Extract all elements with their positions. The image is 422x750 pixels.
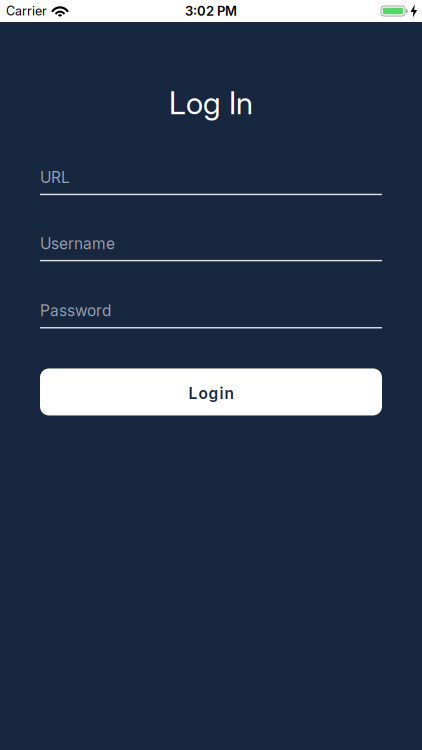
staticText: 3:02 PM <box>185 3 237 19</box>
staticText: Log In <box>169 84 253 122</box>
staticText: Username <box>40 234 115 253</box>
staticText: Carrier <box>6 3 47 18</box>
staticText: Password <box>40 301 111 320</box>
staticText: Login <box>188 384 233 403</box>
button[interactable]: Password <box>40 301 382 328</box>
button[interactable]: Username <box>40 234 382 261</box>
staticText: URL <box>40 168 70 187</box>
button[interactable]: Login <box>40 368 382 415</box>
button[interactable]: URL <box>40 168 382 195</box>
